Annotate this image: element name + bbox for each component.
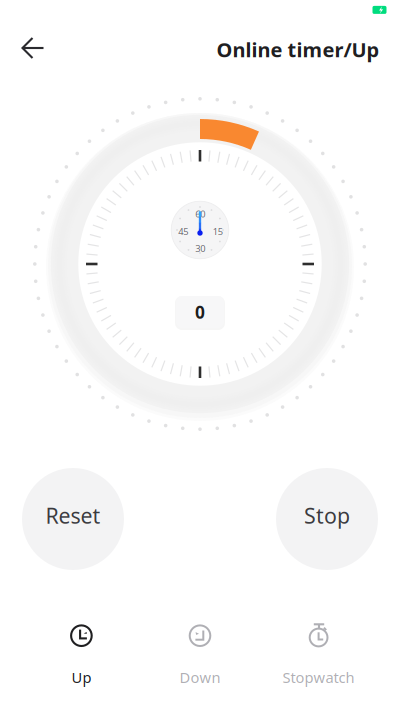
button[interactable]: Down — [145, 613, 255, 697]
staticText: Online timer/Up — [216, 36, 379, 63]
staticText: Down — [179, 668, 220, 687]
staticText: 30 — [195, 242, 205, 255]
staticText: 15 — [213, 225, 223, 238]
button[interactable]: Stopwatch — [264, 613, 374, 697]
button[interactable]: Stop — [276, 468, 378, 570]
staticText: Stopwatch — [283, 668, 355, 687]
button[interactable]: Back — [11, 28, 55, 68]
staticText: Reset — [45, 501, 100, 530]
staticText: 60 — [195, 208, 205, 220]
staticText: Stop — [304, 501, 350, 530]
staticText: Up — [71, 668, 91, 687]
button[interactable]: Up — [26, 613, 136, 697]
staticText: 45 — [178, 225, 188, 238]
button[interactable]: Reset — [22, 468, 124, 570]
staticText: 0 — [195, 300, 205, 323]
